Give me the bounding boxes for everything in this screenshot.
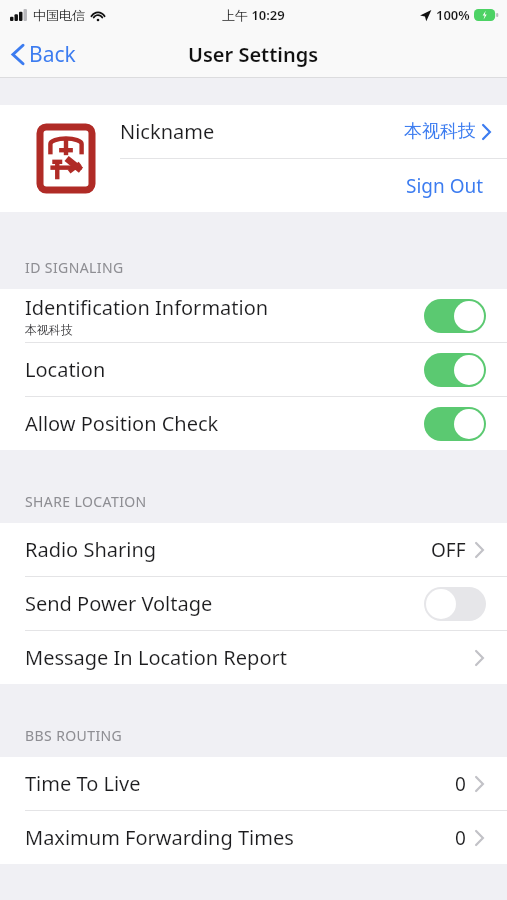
staticText: Send Power Voltage bbox=[25, 590, 213, 617]
staticText: OFF bbox=[431, 537, 466, 563]
button[interactable]: Message In Location Report bbox=[0, 631, 507, 684]
button[interactable]: Sign Out bbox=[0, 159, 507, 212]
button[interactable]: Toggle on bbox=[424, 353, 486, 387]
button[interactable]: Location bbox=[0, 343, 507, 396]
staticText: 0 bbox=[455, 771, 466, 797]
button[interactable]: Toggle off bbox=[424, 587, 486, 621]
staticText: Message In Location Report bbox=[25, 644, 475, 671]
staticText: BBS ROUTING bbox=[25, 726, 123, 745]
staticText: ID SIGNALING bbox=[25, 258, 124, 277]
button[interactable]: Toggle on bbox=[424, 299, 486, 333]
staticText: Back bbox=[29, 40, 76, 69]
staticText: Maximum Forwarding Times bbox=[25, 824, 455, 851]
staticText: Time To Live bbox=[25, 770, 455, 797]
button[interactable]: Time To Live bbox=[0, 757, 507, 810]
staticText: User Settings bbox=[188, 41, 319, 68]
staticText: SHARE LOCATION bbox=[25, 492, 147, 511]
staticText: 0 bbox=[455, 825, 466, 851]
button[interactable]: Send Power Voltage bbox=[0, 577, 507, 630]
button[interactable]: Back bbox=[0, 34, 90, 75]
staticText: 中国电信 bbox=[33, 7, 85, 23]
staticText: 上午 10:29 bbox=[222, 6, 285, 24]
staticText: Nickname bbox=[120, 118, 215, 145]
button[interactable]: Toggle on bbox=[424, 407, 486, 441]
button[interactable]: Allow Position Check bbox=[0, 397, 507, 450]
staticText: Identification Information bbox=[25, 294, 269, 321]
staticText: 100% bbox=[436, 6, 470, 24]
button[interactable]: Nickname bbox=[0, 105, 507, 158]
staticText: 本视科技 bbox=[25, 322, 73, 337]
button[interactable]: Maximum Forwarding Times bbox=[0, 811, 507, 864]
button[interactable]: Identification Information bbox=[0, 289, 507, 342]
button[interactable]: Radio Sharing bbox=[0, 523, 507, 576]
staticText: Radio Sharing bbox=[25, 536, 431, 563]
staticText: Allow Position Check bbox=[25, 410, 219, 437]
staticText: Sign Out bbox=[406, 173, 484, 199]
staticText: 本视科技 bbox=[404, 120, 476, 143]
staticText: Location bbox=[25, 356, 106, 383]
